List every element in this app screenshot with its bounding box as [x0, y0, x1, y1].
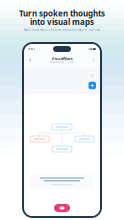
staticText: into visual maps	[30, 17, 94, 27]
button[interactable]: Record	[54, 204, 70, 212]
staticText: VisualNote	[51, 56, 72, 61]
staticText: recording · 1:24	[50, 60, 74, 64]
button[interactable]: Add node	[88, 82, 96, 89]
staticText: Watch conversations become structured ma…	[23, 28, 100, 32]
button[interactable]: More options	[90, 56, 96, 64]
staticText: 9:41	[28, 47, 35, 51]
staticText: Turn spoken thoughts	[19, 8, 105, 19]
button[interactable]: Back	[27, 56, 33, 64]
button[interactable]: Layers	[88, 72, 96, 79]
